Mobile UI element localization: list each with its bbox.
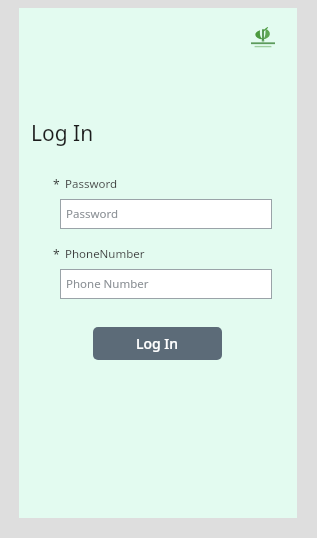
staticText: PhoneNumber: [65, 246, 145, 262]
staticText: *: [53, 176, 60, 192]
button[interactable]: Log In: [93, 327, 222, 360]
staticText: *: [53, 246, 60, 262]
button[interactable]: Phone Number: [60, 269, 272, 299]
button[interactable]: Password: [60, 199, 272, 229]
staticText: Phone Number: [66, 276, 149, 292]
staticText: Log In: [136, 334, 179, 353]
button[interactable]: Brand logo: [248, 25, 278, 49]
staticText: Password: [65, 176, 118, 192]
staticText: Log In: [31, 119, 94, 148]
staticText: Password: [66, 206, 119, 222]
